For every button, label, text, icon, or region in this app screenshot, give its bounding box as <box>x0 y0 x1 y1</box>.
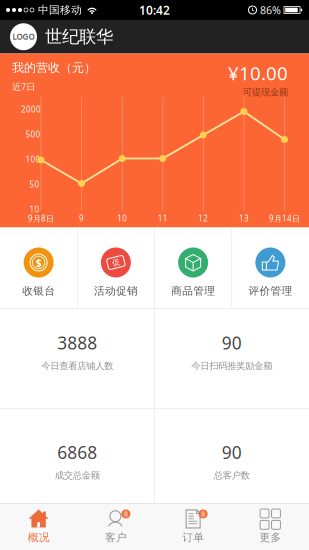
staticText: 概况 <box>28 531 50 544</box>
button[interactable]: 更多 <box>232 503 309 550</box>
staticText: ¥10.00 <box>228 60 288 85</box>
staticText: 90 <box>222 331 242 354</box>
staticText: 50 <box>29 179 39 190</box>
staticText: 评价管理 <box>248 284 292 298</box>
staticText: 9月14日 <box>269 213 300 224</box>
button[interactable]: $ <box>0 227 77 308</box>
staticText: 12 <box>198 213 208 224</box>
staticText: 8 <box>201 509 205 518</box>
staticText: 总客户数 <box>214 470 250 481</box>
button[interactable]: 促 <box>77 227 154 308</box>
staticText: 90 <box>222 441 242 464</box>
staticText: 13 <box>239 213 249 224</box>
staticText: 2000 <box>21 104 41 115</box>
staticText: $ <box>36 255 42 270</box>
staticText: 活动促销 <box>94 284 138 298</box>
staticText: 3888 <box>57 331 97 354</box>
staticText: 6868 <box>57 441 97 464</box>
staticText: 可提现金额 <box>243 86 288 98</box>
staticText: 11 <box>158 213 168 224</box>
staticText: 500 <box>25 129 40 140</box>
staticText: 中国移动 <box>38 3 82 16</box>
staticText: 世纪联华 <box>45 26 113 47</box>
staticText: 商品管理 <box>171 284 215 298</box>
staticText: 更多 <box>259 531 281 544</box>
staticText: 订单 <box>182 531 204 544</box>
staticText: 成交总金额 <box>55 470 100 481</box>
staticText: 10 <box>117 213 127 224</box>
staticText: 9 <box>79 213 84 224</box>
staticText: 10 <box>29 204 39 215</box>
staticText: 收银台 <box>22 284 55 298</box>
staticText: 10:42 <box>139 2 170 18</box>
staticText: 近7日 <box>12 80 35 93</box>
staticText: 今日查看店铺人数 <box>41 360 113 372</box>
button[interactable]: 8 <box>77 503 154 550</box>
button[interactable]: 评价管理 <box>232 227 309 308</box>
staticText: LOGO <box>12 31 34 42</box>
button[interactable]: 概况 <box>0 503 77 550</box>
staticText: 促 <box>112 258 120 267</box>
button[interactable]: 商品管理 <box>154 227 232 308</box>
staticText: 客户 <box>105 531 127 544</box>
staticText: 8 <box>124 509 128 518</box>
staticText: 9月8日 <box>28 213 54 224</box>
staticText: 86% <box>260 3 281 17</box>
staticText: 我的营收（元） <box>12 60 96 75</box>
staticText: 100 <box>25 154 40 165</box>
staticText: 今日扫码推奖励金额 <box>191 360 272 372</box>
button[interactable]: 8 <box>154 503 232 550</box>
